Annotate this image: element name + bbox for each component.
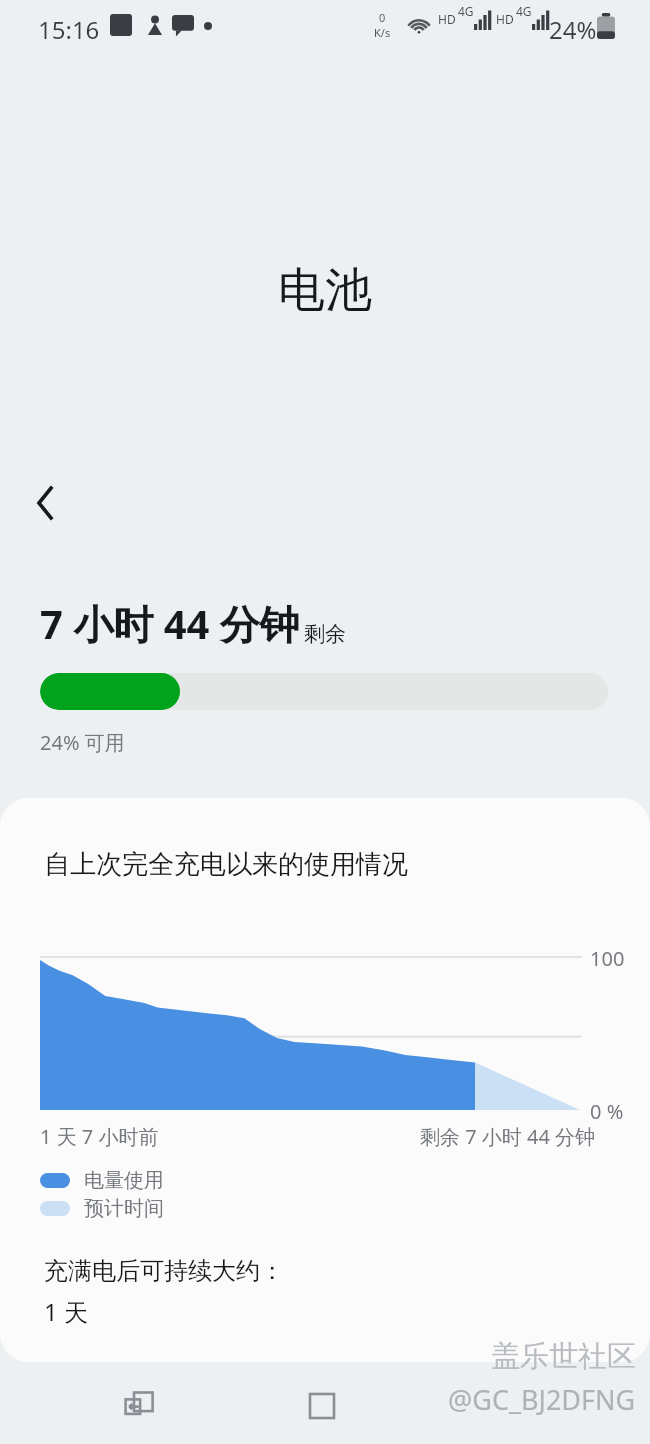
staticText: 100 bbox=[590, 945, 625, 972]
staticText: HD bbox=[438, 11, 456, 27]
staticText: 4G bbox=[458, 3, 474, 19]
staticText: K/s bbox=[374, 25, 391, 40]
button[interactable]: Home bbox=[296, 1380, 348, 1432]
staticText: HD bbox=[496, 11, 514, 27]
staticText: 电量使用 bbox=[84, 1168, 164, 1193]
staticText: 盖乐世社区 bbox=[491, 1338, 636, 1375]
staticText: 0 bbox=[379, 10, 386, 25]
staticText: 充满电后可持续大约： bbox=[44, 1256, 284, 1286]
staticText: 电池 bbox=[278, 261, 372, 320]
staticText: 1 天 bbox=[44, 1295, 88, 1328]
staticText: 1 天 7 小时前 bbox=[40, 1123, 159, 1150]
staticText: 剩余 7 小时 44 分钟 bbox=[420, 1123, 596, 1150]
staticText: 自上次完全充电以来的使用情况 bbox=[44, 848, 408, 881]
staticText: 24% bbox=[549, 13, 597, 46]
staticText: 15:16 bbox=[38, 13, 100, 46]
staticText: 7 小时 44 分钟 bbox=[40, 596, 300, 651]
staticText: 4G bbox=[516, 3, 532, 19]
staticText: 0 % bbox=[590, 1098, 624, 1125]
button[interactable]: Back bbox=[14, 472, 76, 534]
staticText: 剩余 bbox=[304, 621, 346, 647]
staticText: @GC_BJ2DFNG bbox=[448, 1381, 636, 1418]
staticText: 预计时间 bbox=[84, 1196, 164, 1221]
button[interactable]: Back bbox=[484, 1380, 536, 1432]
staticText: 24% 可用 bbox=[40, 729, 125, 756]
button[interactable]: Recent apps bbox=[112, 1378, 168, 1434]
